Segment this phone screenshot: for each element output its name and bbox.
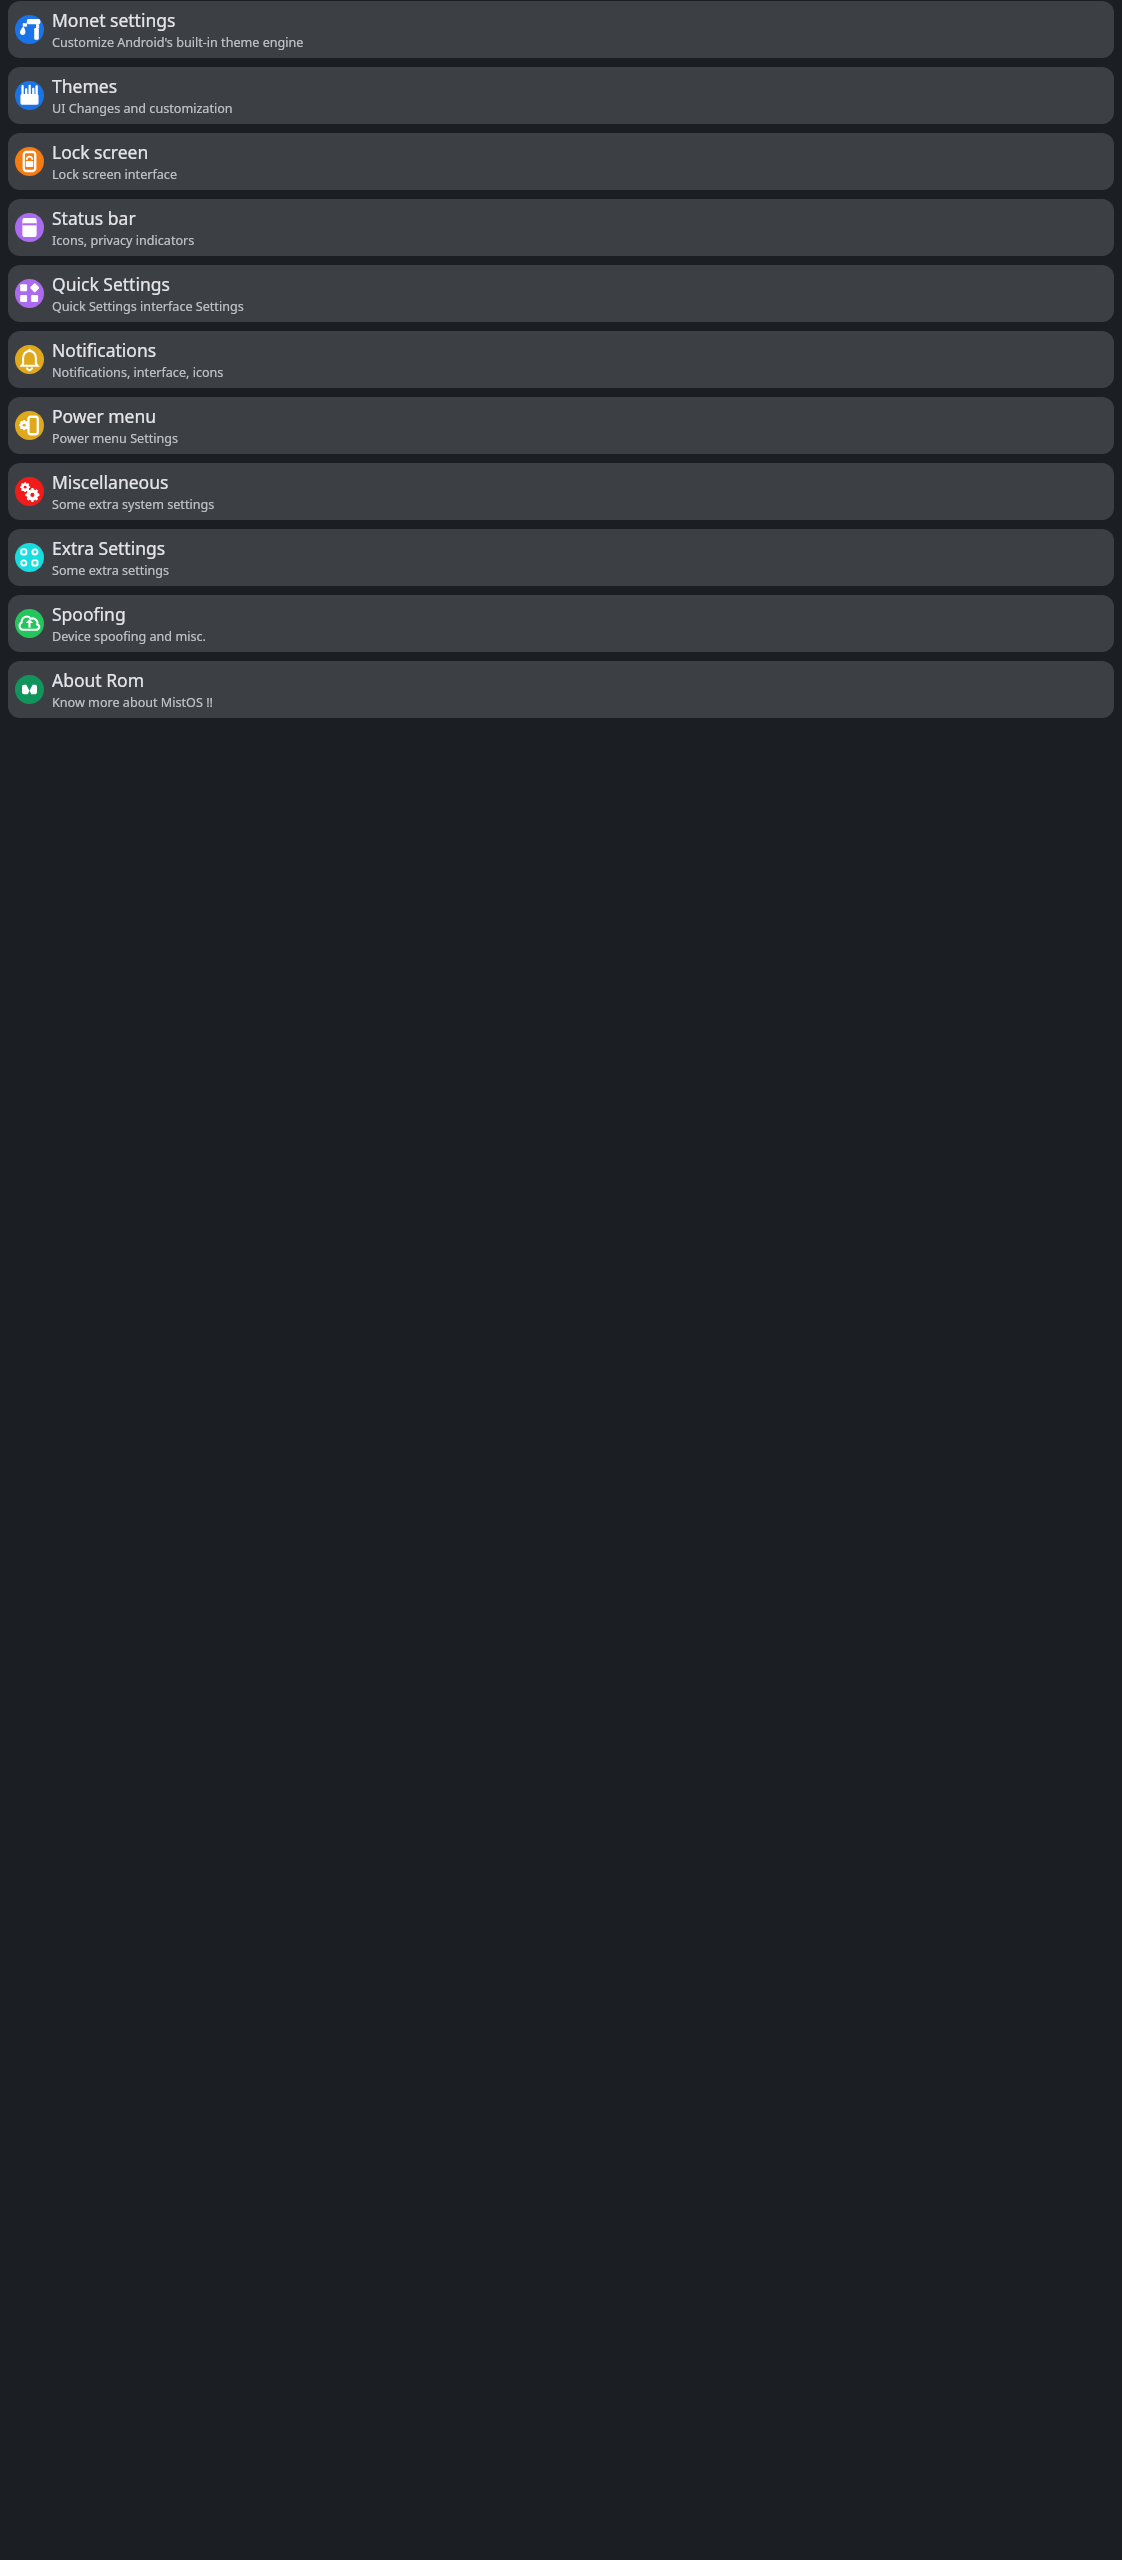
other: Power menu xyxy=(15,411,44,440)
staticText: Device spoofing and misc. xyxy=(52,628,206,645)
other: Notifications xyxy=(15,345,44,374)
staticText: Some extra system settings xyxy=(52,496,215,513)
staticText: Spoofing xyxy=(52,602,126,626)
staticText: About Rom xyxy=(52,668,145,692)
other: Status bar xyxy=(15,213,44,242)
button[interactable]: Miscellaneous xyxy=(8,463,1114,520)
other: Lock screen xyxy=(15,147,44,176)
other: Monet settings xyxy=(15,15,44,44)
button[interactable]: Notifications xyxy=(8,331,1114,388)
staticText: Power menu Settings xyxy=(52,430,179,447)
staticText: Some extra settings xyxy=(52,562,170,579)
staticText: Quick Settings interface Settings xyxy=(52,298,244,315)
other: Miscellaneous xyxy=(15,477,44,506)
other: Extra Settings xyxy=(15,543,44,572)
staticText: Monet settings xyxy=(52,8,176,32)
staticText: Extra Settings xyxy=(52,536,166,560)
staticText: Icons, privacy indicators xyxy=(52,232,195,249)
other: Themes xyxy=(15,81,44,110)
button[interactable]: Monet settings xyxy=(8,1,1114,58)
button[interactable]: Extra Settings xyxy=(8,529,1114,586)
staticText: Customize Android's built-in theme engin… xyxy=(52,34,304,51)
other: About Rom xyxy=(15,675,44,704)
button[interactable]: About Rom xyxy=(8,661,1114,718)
button[interactable]: Themes xyxy=(8,67,1114,124)
staticText: Quick Settings xyxy=(52,272,170,296)
staticText: Lock screen interface xyxy=(52,166,177,183)
staticText: Notifications xyxy=(52,338,157,362)
staticText: Lock screen xyxy=(52,140,149,164)
staticText: UI Changes and customization xyxy=(52,100,233,117)
button[interactable]: Status bar xyxy=(8,199,1114,256)
other: Spoofing xyxy=(15,609,44,638)
button[interactable]: Lock screen xyxy=(8,133,1114,190)
other: Quick Settings xyxy=(15,279,44,308)
staticText: Status bar xyxy=(52,206,136,230)
button[interactable]: Power menu xyxy=(8,397,1114,454)
button[interactable]: Quick Settings xyxy=(8,265,1114,322)
staticText: Miscellaneous xyxy=(52,470,169,494)
staticText: Know more about MistOS !! xyxy=(52,694,213,711)
staticText: Power menu xyxy=(52,404,157,428)
button[interactable]: Spoofing xyxy=(8,595,1114,652)
staticText: Themes xyxy=(52,74,118,98)
staticText: Notifications, interface, icons xyxy=(52,364,224,381)
